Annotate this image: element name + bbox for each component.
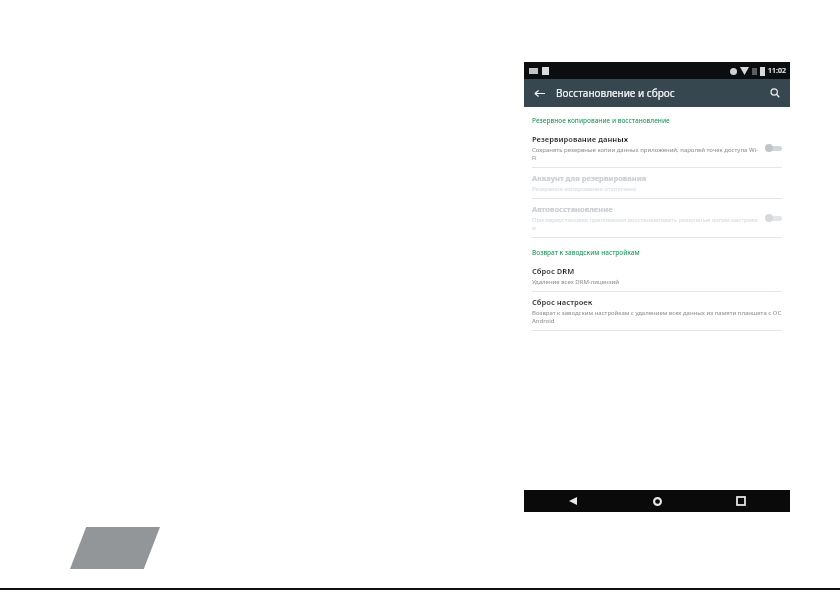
staticText: Возврат к заводским настройкам [532,248,640,257]
button[interactable]: Переключатель [764,141,784,155]
staticText: Сброс DRM [532,266,575,276]
button[interactable]: Автовосстановление [524,199,790,237]
staticText: Удаление всех DRM-лицензий [532,278,620,286]
button[interactable]: Резервирование данных [524,129,790,167]
staticText: Автовосстановление [532,204,613,214]
button[interactable]: Обзор [732,492,750,510]
staticText: При переустановке приложения восстанавли… [532,216,758,232]
staticText: Сброс настроек [532,297,593,307]
button[interactable]: Сброс DRM [524,261,790,291]
staticText: Возврат к заводским настройкам с удалени… [532,309,782,325]
staticText: 11:02 [768,66,786,76]
button[interactable]: Поиск [765,83,785,103]
button[interactable]: Аккаунт для резервирования [524,168,790,198]
button[interactable]: Назад [528,82,550,104]
button[interactable]: Переключатель [764,211,784,225]
staticText: Резервирование данных [532,134,628,144]
staticText: Восстановление и сброс [556,86,675,100]
staticText: Аккаунт для резервирования [532,173,647,183]
button[interactable]: Сброс настроек [524,292,790,330]
button[interactable]: Назад [564,492,582,510]
staticText: Резервное копирование отключено [532,185,637,193]
staticText: Сохранять резервные копии данных приложе… [532,146,758,162]
staticText: Резервное копирование и восстановление [532,116,670,125]
button[interactable]: Главный экран [648,492,666,510]
